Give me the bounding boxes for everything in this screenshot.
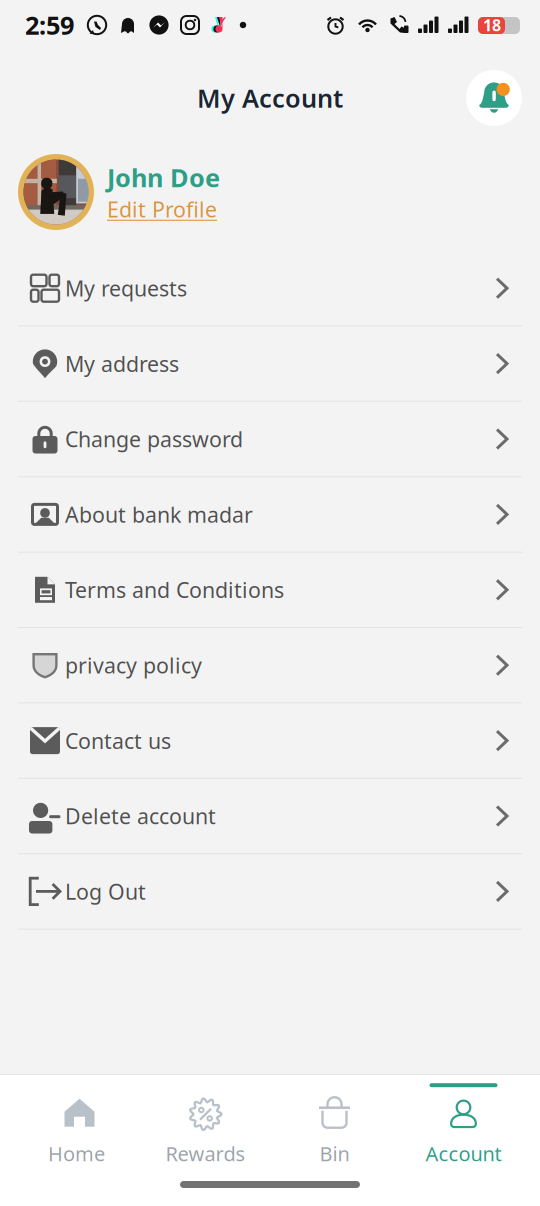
button[interactable]: My address (0, 326, 540, 402)
staticText: Change password (65, 425, 243, 453)
button[interactable]: About bank madar (0, 477, 540, 553)
staticText: Terms and Conditions (65, 576, 284, 604)
staticText: My requests (65, 274, 187, 302)
button[interactable]: Terms and Conditions (0, 553, 540, 628)
staticText: My address (65, 349, 179, 378)
staticText: Delete account (65, 802, 216, 830)
button[interactable]: Delete account (0, 779, 540, 854)
button[interactable]: Home (12, 1083, 141, 1167)
staticText: John Doe (107, 160, 220, 194)
staticText: Home (48, 1140, 105, 1167)
button[interactable]: Account (399, 1083, 528, 1167)
staticText: 18 (483, 14, 501, 36)
staticText: Bin (319, 1140, 349, 1167)
button[interactable]: Change password (0, 402, 540, 477)
staticText: Account (425, 1140, 501, 1167)
button[interactable]: Rewards (141, 1083, 270, 1167)
staticText: Contact us (65, 726, 171, 755)
staticText: 2:59 (25, 8, 74, 42)
staticText: Log Out (65, 877, 146, 905)
staticText: Edit Profile (107, 195, 217, 223)
staticText: Rewards (165, 1140, 245, 1167)
staticText: My Account (197, 81, 343, 115)
button[interactable]: privacy policy (0, 628, 540, 703)
button[interactable]: My requests (0, 251, 540, 326)
button[interactable]: Bin (270, 1083, 399, 1167)
staticText: privacy policy (65, 651, 202, 679)
button[interactable]: Edit Profile (107, 195, 217, 223)
button[interactable]: Notifications (466, 70, 522, 126)
staticText: About bank madar (65, 500, 253, 528)
button[interactable]: Log Out (0, 854, 540, 930)
button[interactable]: Contact us (0, 703, 540, 779)
